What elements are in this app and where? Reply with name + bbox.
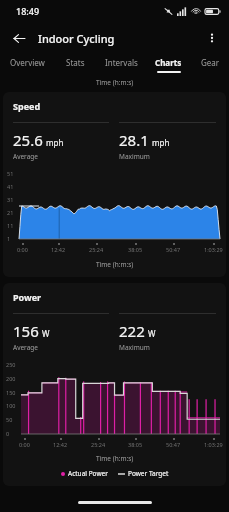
staticText: 12:42 (51, 246, 66, 253)
staticText: 31 (7, 196, 14, 203)
staticText: Maximum (119, 152, 150, 161)
button[interactable]: More options (200, 26, 224, 50)
staticText: 100 (6, 402, 16, 409)
staticText: 38:05 (128, 441, 143, 448)
staticText: 200 (6, 375, 16, 382)
staticText: Overview (10, 57, 45, 68)
staticText: 150 (6, 389, 16, 396)
staticText: 25.6 (13, 130, 43, 150)
staticText: 50 (6, 416, 13, 423)
staticText: Indoor Cycling (38, 31, 115, 46)
button[interactable]: Intervals (96, 54, 146, 76)
button[interactable]: Gear (191, 54, 229, 76)
staticText: 0:00 (17, 246, 28, 253)
staticText: 0 (6, 430, 10, 437)
staticText: 1:03:29 (204, 246, 223, 253)
button[interactable]: Charts (146, 54, 191, 76)
staticText: mph (152, 137, 170, 148)
staticText: Time (h:m:s) (96, 260, 134, 269)
staticText: W (148, 328, 156, 339)
staticText: 41 (7, 183, 14, 190)
staticText: Power Target (128, 469, 169, 478)
staticText: 50:47 (166, 441, 181, 448)
staticText: 12:42 (53, 441, 68, 448)
staticText: 25:24 (91, 441, 106, 448)
staticText: Average (13, 152, 38, 161)
staticText: Power (13, 291, 42, 303)
button[interactable]: Speed (3, 92, 226, 277)
staticText: 11 (7, 222, 14, 229)
staticText: 28.1 (119, 130, 149, 150)
staticText: 1:03:29 (204, 441, 223, 448)
staticText: 51 (7, 170, 14, 177)
staticText: 18:49 (16, 5, 40, 17)
staticText: Time (h:m:s) (96, 78, 134, 87)
staticText: Intervals (105, 57, 138, 68)
staticText: Charts (155, 57, 182, 68)
staticText: 0:00 (19, 441, 30, 448)
staticText: Gear (201, 57, 220, 68)
staticText: 1 (7, 235, 11, 242)
staticText: Maximum (119, 343, 150, 352)
button[interactable]: Stats (55, 54, 96, 76)
staticText: W (42, 328, 50, 339)
staticText: Actual Power (68, 469, 108, 478)
staticText: 156 (13, 321, 39, 341)
staticText: 21 (7, 209, 14, 216)
staticText: 222 (119, 321, 145, 341)
staticText: 250 (6, 361, 16, 368)
button[interactable]: Back (6, 25, 32, 51)
staticText: Speed (13, 100, 41, 112)
staticText: 25:24 (89, 246, 104, 253)
button[interactable]: Overview (0, 54, 55, 76)
staticText: 38:05 (128, 246, 143, 253)
staticText: Time (h:m:s) (96, 454, 134, 463)
staticText: 50:47 (166, 246, 181, 253)
button[interactable]: Power (3, 283, 226, 486)
staticText: mph (46, 137, 64, 148)
staticText: Average (13, 343, 38, 352)
staticText: Stats (66, 57, 85, 68)
